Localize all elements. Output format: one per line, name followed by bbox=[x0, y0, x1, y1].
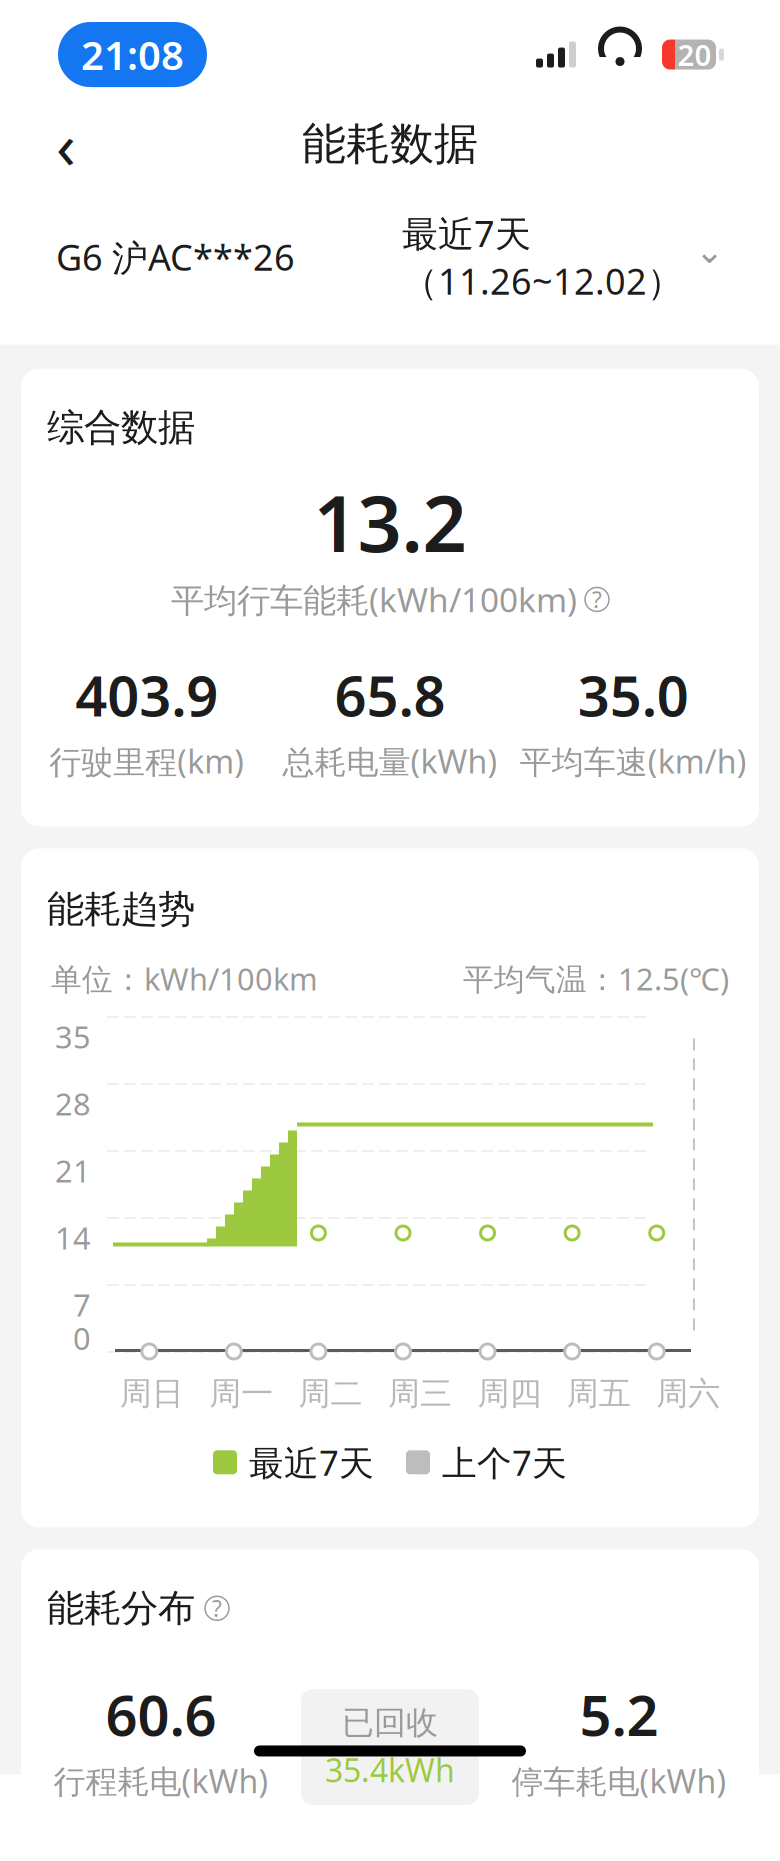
button[interactable]: 最近7天（11.26~12.02） bbox=[402, 209, 724, 305]
staticText: 20 bbox=[677, 35, 711, 74]
staticText: 周五 bbox=[567, 1374, 631, 1413]
staticText: 21 bbox=[55, 1150, 91, 1191]
staticText: 65.8 bbox=[334, 657, 445, 732]
staticText: 上个7天 bbox=[442, 1439, 567, 1485]
staticText: 周四 bbox=[477, 1374, 541, 1413]
staticText: 14 bbox=[55, 1217, 91, 1258]
staticText: ⌄ bbox=[695, 231, 724, 271]
staticText: 最近7天 bbox=[249, 1439, 374, 1485]
staticText: 7 bbox=[73, 1284, 91, 1325]
staticText: ? bbox=[592, 584, 602, 614]
staticText: 周三 bbox=[388, 1374, 452, 1413]
staticText: 13.2 bbox=[313, 471, 466, 573]
staticText: 平均气温：12.5(℃) bbox=[463, 958, 729, 999]
staticText: 能耗分布 bbox=[47, 1585, 195, 1631]
staticText: ? bbox=[212, 1593, 222, 1623]
staticText: 35.4kWh bbox=[325, 1748, 455, 1791]
staticText: 35 bbox=[55, 1016, 91, 1057]
staticText: 能耗数据 bbox=[302, 117, 478, 171]
button[interactable]: Back bbox=[34, 112, 98, 176]
staticText: 周日 bbox=[120, 1374, 184, 1413]
staticText: 行程耗电(kWh) bbox=[53, 1759, 268, 1802]
staticText: 5.2 bbox=[579, 1677, 658, 1752]
staticText: 35.0 bbox=[578, 657, 689, 732]
staticText: 单位：kWh/100km bbox=[51, 958, 318, 999]
staticText: 周二 bbox=[299, 1374, 363, 1413]
staticText: 综合数据 bbox=[47, 405, 195, 451]
staticText: G6 沪AC***26 bbox=[56, 233, 295, 281]
staticText: 403.9 bbox=[75, 657, 218, 732]
staticText: 能耗趋势 bbox=[47, 886, 195, 932]
staticText: 周六 bbox=[656, 1374, 720, 1413]
staticText: 60.6 bbox=[105, 1677, 216, 1752]
staticText: 总耗电量(kWh) bbox=[282, 740, 497, 782]
staticText: 最近7天（11.26~12.02） bbox=[402, 209, 683, 305]
staticText: 28 bbox=[55, 1083, 91, 1124]
staticText: ‹ bbox=[56, 102, 76, 187]
staticText: 行驶里程(km) bbox=[49, 740, 244, 782]
staticText: 0 bbox=[73, 1318, 91, 1358]
staticText: 周一 bbox=[209, 1374, 273, 1413]
staticText: 平均行车能耗(kWh/100km) bbox=[171, 577, 577, 622]
staticText: 停车耗电(kWh) bbox=[511, 1759, 726, 1802]
staticText: 平均车速(km/h) bbox=[520, 740, 747, 782]
staticText: 21:08 bbox=[81, 28, 184, 81]
staticText: 已回收 bbox=[342, 1703, 438, 1742]
